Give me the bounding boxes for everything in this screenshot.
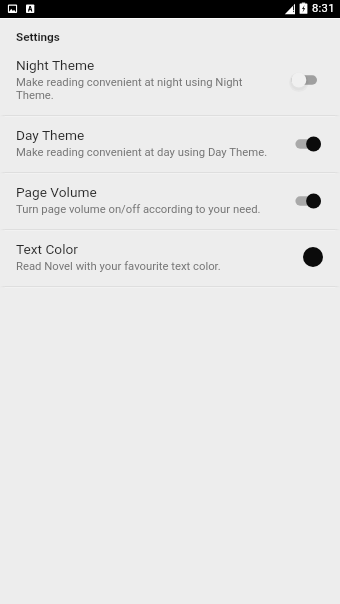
button[interactable]: Day Theme xyxy=(0,117,340,172)
button[interactable]: Toggle on xyxy=(291,130,323,158)
staticText: Day Theme xyxy=(16,128,85,143)
staticText: Settings xyxy=(16,30,60,44)
button[interactable]: Page Volume xyxy=(0,174,340,229)
staticText: Page Volume xyxy=(16,185,97,200)
staticText: Make reading convenient at night using N… xyxy=(16,76,272,102)
button[interactable]: Pick text color xyxy=(293,244,323,270)
button[interactable]: Text Color xyxy=(0,231,340,286)
staticText: Make reading convenient at day using Day… xyxy=(16,146,268,159)
staticText: Read Novel with your favourite text colo… xyxy=(16,260,221,273)
staticText: Night Theme xyxy=(16,58,95,73)
staticText: 8:31 xyxy=(312,2,335,15)
staticText: Text Color xyxy=(16,242,78,257)
staticText: Turn page volume on/off according to you… xyxy=(16,203,261,216)
button[interactable]: Night Theme xyxy=(0,47,340,115)
button[interactable]: Toggle on xyxy=(291,187,323,215)
button[interactable]: Toggle off xyxy=(291,66,323,94)
